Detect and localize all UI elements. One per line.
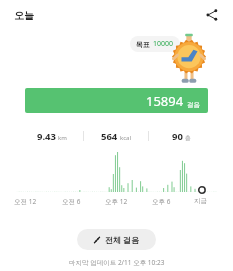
staticText: 9.43 bbox=[37, 130, 56, 143]
staticText: kcal bbox=[120, 134, 131, 142]
button[interactable]: 564 bbox=[84, 130, 148, 143]
staticText: 10000 bbox=[153, 39, 174, 49]
staticText: 오전 6 bbox=[62, 197, 81, 206]
staticText: 걸음 bbox=[187, 101, 200, 109]
staticText: 전체 걸음 bbox=[105, 234, 140, 245]
button[interactable]: 9.43 bbox=[20, 130, 83, 143]
staticText: 오후 6 bbox=[152, 197, 171, 206]
button[interactable]: 90 bbox=[149, 130, 213, 143]
staticText: 마지막 업데이트 2/11 오후 10:23 bbox=[69, 258, 165, 267]
staticText: km bbox=[58, 134, 67, 142]
staticText: 오늘 bbox=[14, 9, 34, 22]
button[interactable]: 전체 걸음 bbox=[77, 229, 156, 250]
button[interactable]: 15894 bbox=[25, 88, 208, 113]
staticText: 15894 bbox=[146, 92, 184, 110]
button[interactable]: Share bbox=[201, 4, 223, 26]
staticText: 오전 12 bbox=[14, 197, 37, 206]
staticText: 목표 bbox=[136, 40, 150, 49]
button[interactable]: 목표 bbox=[130, 36, 180, 52]
staticText: 층 bbox=[185, 134, 191, 142]
staticText: 90 bbox=[172, 130, 183, 143]
staticText: 지금 bbox=[194, 197, 207, 205]
staticText: 564 bbox=[101, 130, 118, 143]
staticText: 오후 12 bbox=[105, 197, 128, 206]
